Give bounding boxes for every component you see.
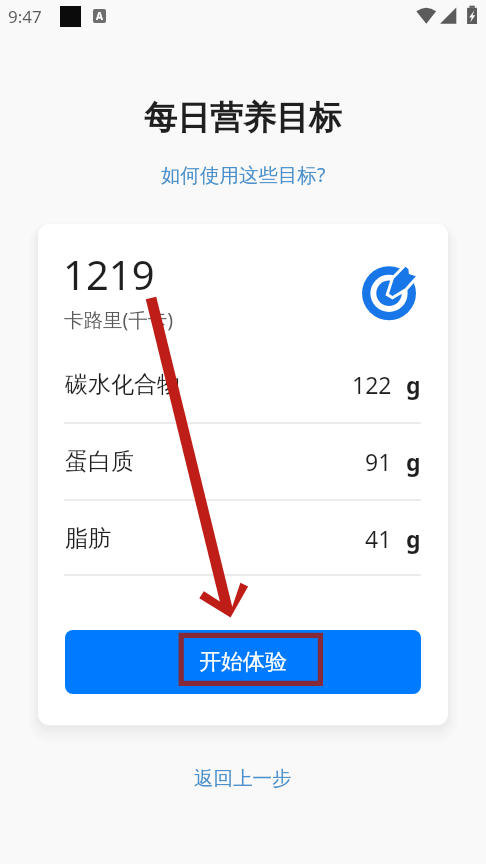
staticText: A (96, 9, 103, 23)
staticText: 碳水化合物 (65, 370, 180, 399)
staticText: g (406, 446, 421, 477)
staticText: 卡路里(千卡) (64, 306, 174, 333)
staticText: 41 (365, 523, 392, 554)
staticText: 蛋白质 (65, 447, 134, 476)
button[interactable]: 蛋白质 (65, 442, 421, 480)
staticText: 开始体验 (199, 648, 287, 676)
staticText: g (406, 369, 421, 400)
staticText: 1219 (63, 247, 155, 301)
staticText: 9:47 (8, 5, 42, 28)
button[interactable]: Nutrition goal (360, 264, 418, 322)
button[interactable]: 脂肪 (65, 519, 421, 557)
button[interactable]: 碳水化合物 (65, 365, 421, 403)
staticText: 脂肪 (65, 524, 111, 553)
staticText: 每日营养目标 (144, 97, 342, 139)
button[interactable]: 开始体验 (65, 630, 421, 694)
button[interactable]: 返回上一步 (188, 761, 298, 796)
button[interactable]: 如何使用这些目标? (155, 156, 332, 193)
staticText: 91 (365, 446, 392, 477)
staticText: g (406, 523, 421, 554)
staticText: 122 (352, 369, 392, 400)
